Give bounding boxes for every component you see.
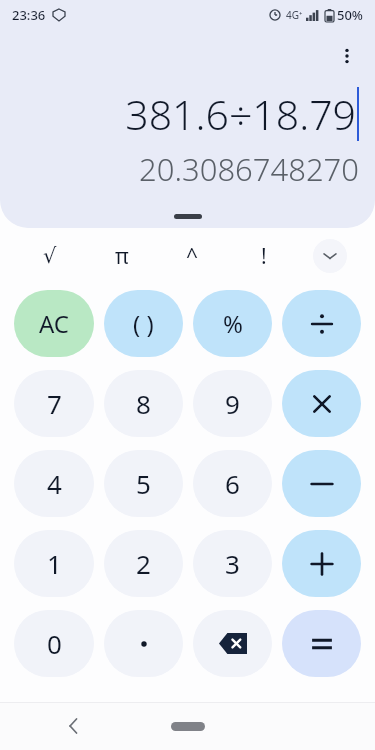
staticText: 6 <box>225 466 240 501</box>
button[interactable]: ^ <box>157 228 228 284</box>
button[interactable]: ( ) <box>104 290 183 357</box>
button[interactable]: % <box>193 290 272 357</box>
button[interactable]: 8 <box>104 370 183 437</box>
button[interactable]: 7 <box>14 370 94 437</box>
button[interactable]: Backspace <box>193 610 272 677</box>
staticText: 20.3086748270 <box>16 148 359 190</box>
button[interactable]: Equals <box>282 610 361 677</box>
button[interactable]: 1 <box>14 530 94 597</box>
button[interactable]: 3 <box>193 530 272 597</box>
staticText: 1 <box>47 546 62 581</box>
staticText: √ <box>43 244 57 268</box>
button[interactable]: AC <box>14 290 94 357</box>
button[interactable]: 4 <box>14 450 94 517</box>
button[interactable]: Expand <box>313 239 347 273</box>
button[interactable]: 0 <box>14 610 94 677</box>
button[interactable]: Subtract <box>282 450 361 517</box>
button[interactable]: 9 <box>193 370 272 437</box>
staticText: 4G⁺ <box>286 8 303 22</box>
staticText: 8 <box>136 386 151 421</box>
button[interactable]: More options <box>327 36 367 76</box>
staticText: ! <box>261 242 267 271</box>
staticText: 381.6÷18.79 <box>125 86 356 142</box>
staticText: % <box>223 307 243 340</box>
staticText: 9 <box>225 386 240 421</box>
staticText: 3 <box>225 546 240 581</box>
staticText: AC <box>39 307 70 340</box>
staticText: ( ) <box>133 307 154 340</box>
staticText: ^ <box>186 242 199 271</box>
button[interactable]: Decimal point <box>104 610 183 677</box>
button[interactable]: √ <box>14 228 86 284</box>
staticText: π <box>115 242 129 271</box>
button[interactable]: Divide <box>282 290 361 357</box>
staticText: 2 <box>136 546 151 581</box>
button[interactable]: ! <box>228 228 299 284</box>
staticText: 7 <box>47 386 62 421</box>
staticText: 23:36 <box>12 6 46 24</box>
button[interactable]: 2 <box>104 530 183 597</box>
staticText: 0 <box>47 626 62 661</box>
button[interactable]: 5 <box>104 450 183 517</box>
button[interactable]: Back <box>56 708 92 744</box>
staticText: 4 <box>47 466 62 501</box>
staticText: 50% <box>337 6 363 24</box>
button[interactable]: Home <box>160 713 216 739</box>
button[interactable]: π <box>86 228 157 284</box>
staticText: 5 <box>136 466 151 501</box>
button[interactable]: Add <box>282 530 361 597</box>
button[interactable]: Multiply <box>282 370 361 437</box>
button[interactable]: 6 <box>193 450 272 517</box>
